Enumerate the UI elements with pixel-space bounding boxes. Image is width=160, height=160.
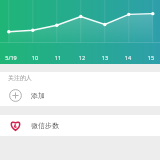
staticText: 10 bbox=[27, 54, 43, 61]
staticText: 15 bbox=[143, 54, 159, 61]
staticText: 添加 bbox=[31, 91, 45, 100]
staticText: 13 bbox=[97, 54, 113, 61]
staticText: 14 bbox=[120, 54, 136, 61]
staticText: 关注的人 bbox=[8, 74, 32, 82]
button[interactable]: 微信步数 bbox=[0, 115, 160, 136]
other: 微信步数 bbox=[9, 119, 22, 132]
other: 添加 bbox=[9, 89, 22, 102]
staticText: 微信步数 bbox=[31, 121, 59, 130]
staticText: 11 bbox=[50, 54, 66, 61]
staticText: 5/19 bbox=[2, 54, 20, 61]
staticText: 12 bbox=[74, 54, 90, 61]
button[interactable]: 添加 bbox=[0, 84, 160, 106]
